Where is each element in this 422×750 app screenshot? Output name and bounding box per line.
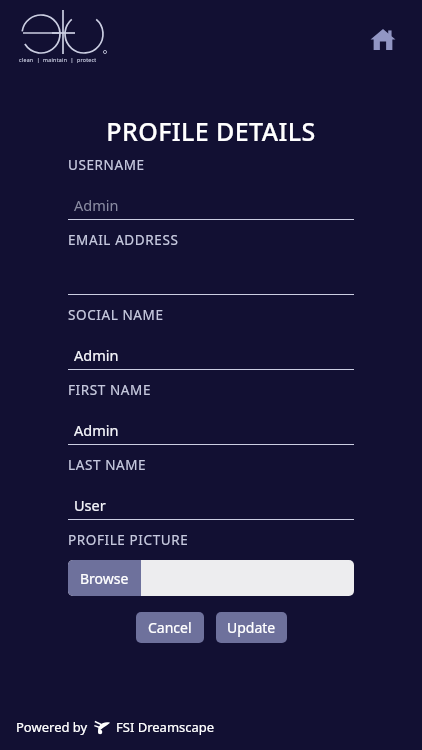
button[interactable]: eto logo: [18, 8, 110, 70]
staticText: User: [74, 495, 106, 515]
staticText: USERNAME: [68, 156, 145, 174]
button[interactable]: Admin: [68, 193, 354, 217]
staticText: Cancel: [148, 618, 192, 637]
staticText: Admin: [74, 345, 119, 365]
staticText: PROFILE PICTURE: [68, 531, 189, 549]
staticText: Admin: [74, 195, 119, 215]
staticText: Browse: [80, 569, 129, 588]
staticText: LAST NAME: [68, 456, 147, 474]
button[interactable]: Update: [216, 612, 287, 643]
button[interactable]: Admin: [68, 343, 354, 367]
staticText: Powered by: [16, 718, 88, 736]
button[interactable]: Admin: [68, 418, 354, 442]
staticText: clean | maintain | protect: [19, 56, 97, 63]
staticText: FIRST NAME: [68, 381, 152, 399]
staticText: EMAIL ADDRESS: [68, 231, 179, 249]
staticText: PROFILE DETAILS: [0, 114, 422, 148]
button[interactable]: Browse: [68, 560, 141, 596]
staticText: SOCIAL NAME: [68, 306, 164, 324]
button[interactable]: User: [68, 493, 354, 517]
button[interactable]: [141, 560, 354, 596]
staticText: FSI Dreamscape: [116, 718, 215, 736]
button[interactable]: Home: [366, 22, 400, 56]
button[interactable]: Cancel: [136, 612, 204, 643]
staticText: Update: [227, 618, 276, 637]
staticText: Admin: [74, 420, 119, 440]
